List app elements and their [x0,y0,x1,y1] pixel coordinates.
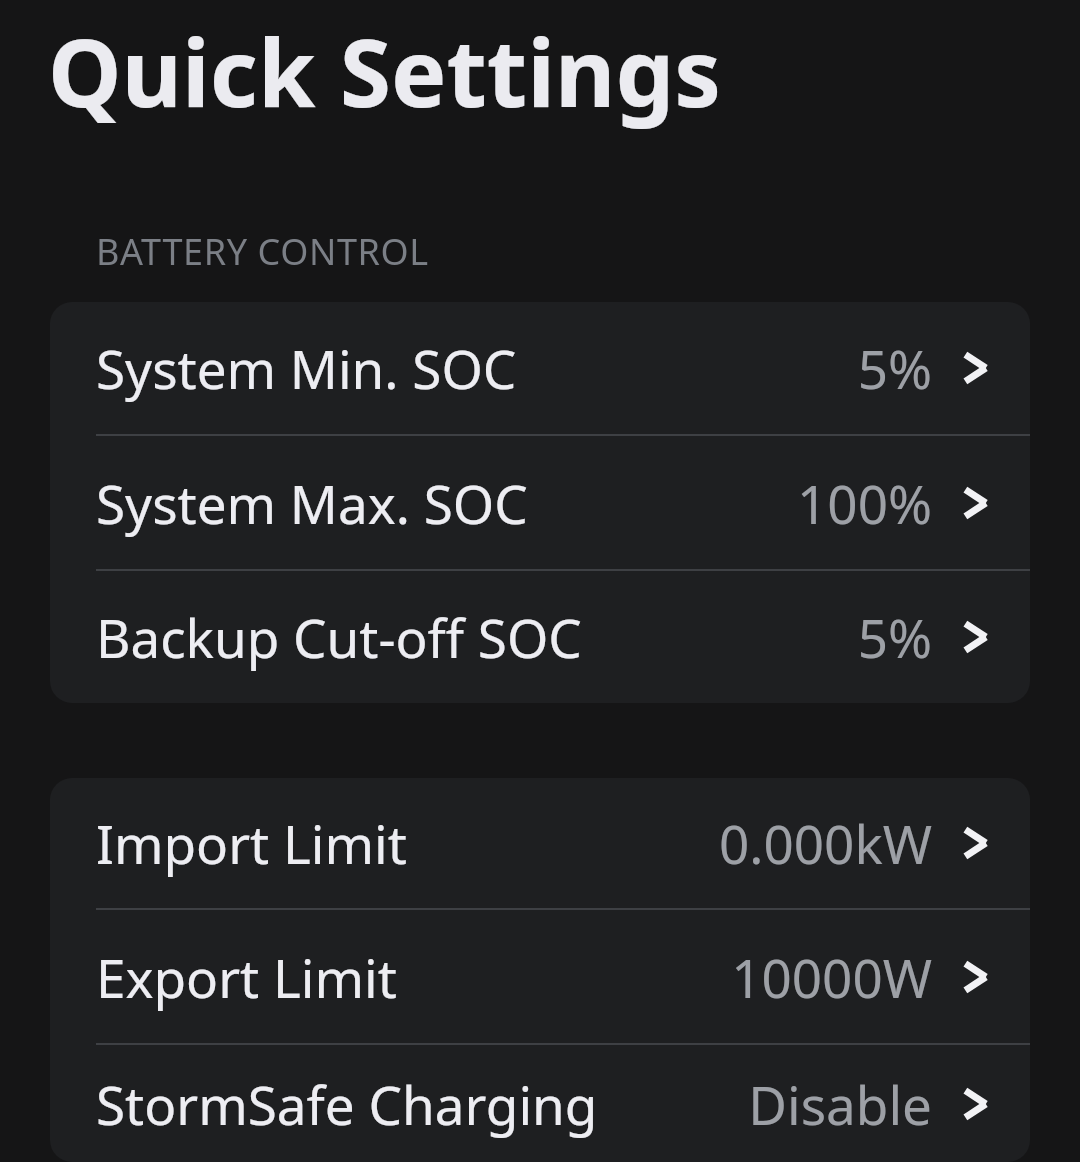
staticText: Backup Cut-off SOC [96,601,582,673]
staticText: Disable [748,1068,932,1140]
staticText: System Max. SOC [96,467,528,539]
staticText: Export Limit [96,941,397,1013]
button[interactable]: Backup Cut-off SOC [50,571,1030,703]
staticText: BATTERY CONTROL [96,227,429,276]
staticText: System Min. SOC [96,332,517,404]
staticText: 100% [797,467,932,539]
button[interactable]: System Min. SOC [50,302,1030,434]
staticText: Import Limit [96,807,407,879]
staticText: 10000W [731,941,932,1013]
button[interactable]: Import Limit [50,778,1030,908]
button[interactable]: System Max. SOC [50,436,1030,569]
staticText: Quick Settings [48,8,721,135]
staticText: StormSafe Charging [96,1068,598,1140]
staticText: 0.000kW [718,807,932,879]
button[interactable]: StormSafe Charging [50,1045,1030,1162]
button[interactable]: Export Limit [50,910,1030,1043]
staticText: 5% [857,601,932,673]
staticText: 5% [857,332,932,404]
